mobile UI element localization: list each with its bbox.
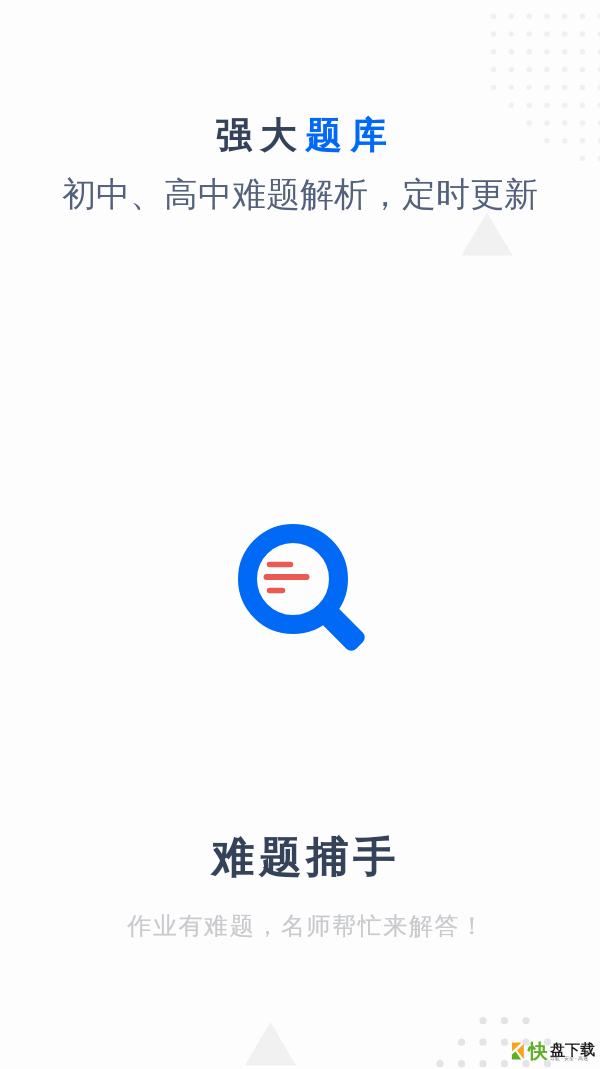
staticText: 盘下载 (550, 1041, 595, 1060)
staticText: 导航 · 安全 · 高速 (550, 1055, 588, 1062)
staticText: 初中、高中难题解析，定时更新 (62, 173, 538, 216)
staticText: 强大题库 (215, 113, 395, 158)
button[interactable]: 难题捕手 搜题 (223, 509, 373, 659)
button[interactable]: 快盘下载 (508, 1038, 600, 1064)
staticText: 作业有难题，名师帮忙来解答！ (127, 911, 486, 941)
staticText: 难题捕手 (209, 832, 397, 885)
staticText: 快 (528, 1040, 547, 1064)
